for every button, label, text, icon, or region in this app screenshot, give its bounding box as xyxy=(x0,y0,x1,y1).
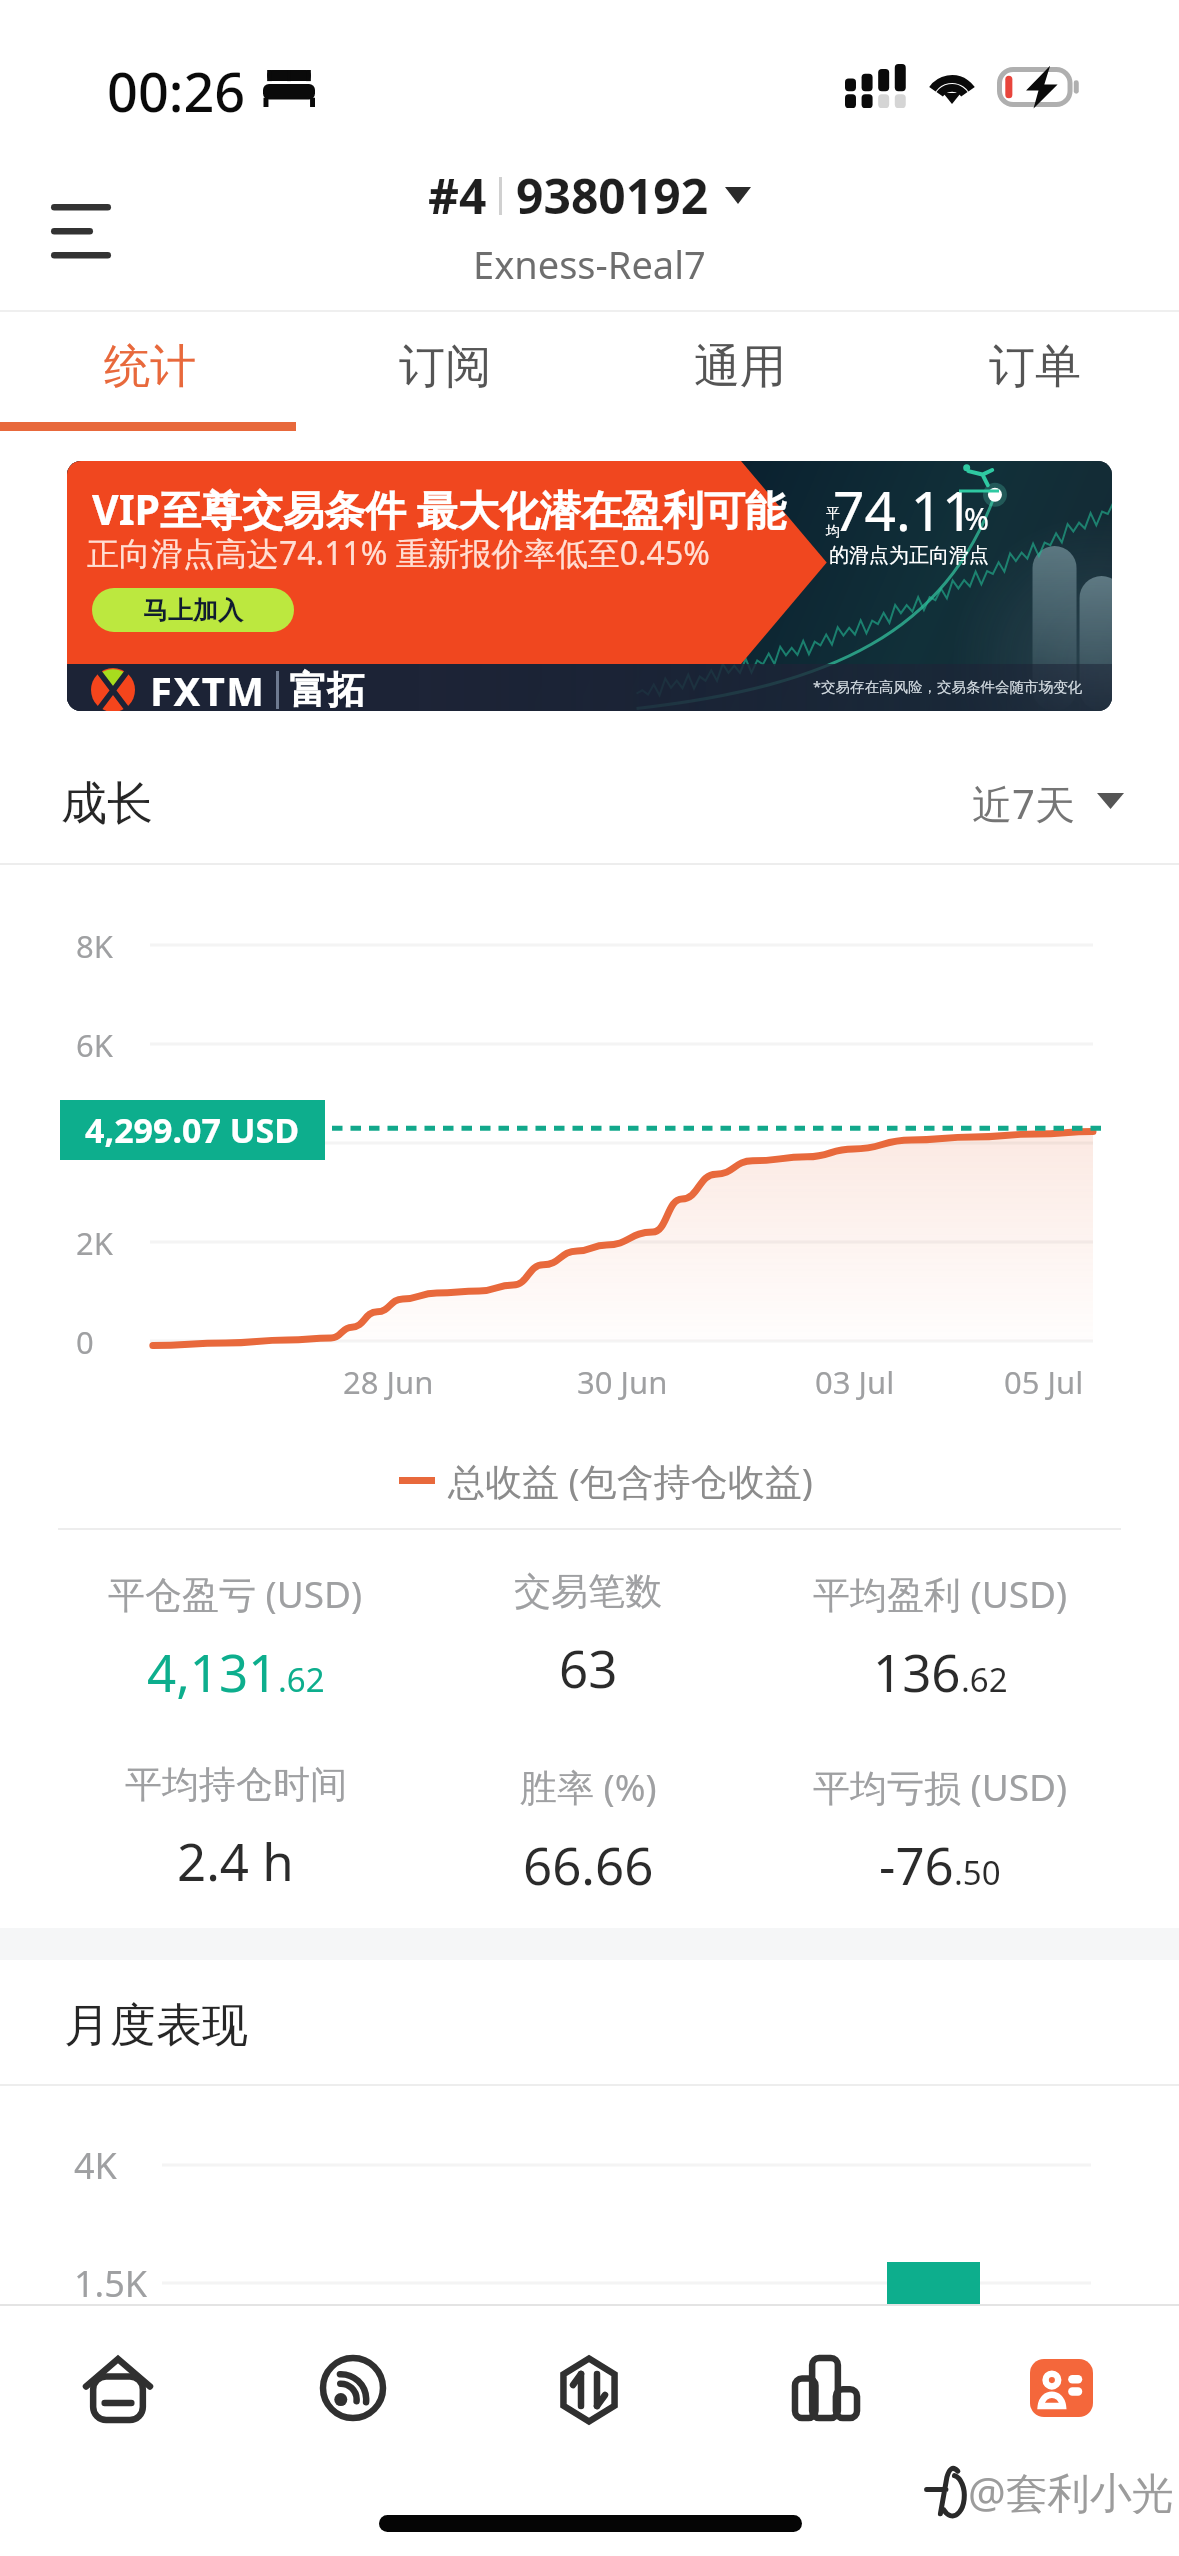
staticText: 4,131 xyxy=(147,1637,278,1706)
staticText: 平均持仓时间 xyxy=(125,1761,347,1808)
staticText: 66.66 xyxy=(523,1830,654,1899)
staticText: 30 Jun xyxy=(577,1361,668,1403)
staticText: 63 xyxy=(559,1633,618,1702)
staticText: 03 Jul xyxy=(815,1361,895,1403)
staticText: @套利小光 xyxy=(968,2463,1174,2520)
button[interactable]: 订阅 xyxy=(294,310,589,431)
button[interactable]: History xyxy=(707,2304,943,2470)
button[interactable]: Home xyxy=(0,2304,235,2470)
button[interactable]: Accounts xyxy=(943,2304,1179,2470)
staticText: 4,299.07 USD xyxy=(85,1107,300,1153)
button[interactable]: 统计 xyxy=(0,310,294,431)
staticText: 1.5K xyxy=(74,2259,148,2308)
staticText: 富拓 xyxy=(289,666,365,711)
staticText: Exness-Real7 xyxy=(473,238,706,290)
staticText: 成长 xyxy=(61,775,153,833)
staticText: FXTM xyxy=(150,663,266,711)
staticText: 136 xyxy=(873,1637,961,1706)
staticText: 8K xyxy=(76,925,113,967)
staticText: 月度表现 xyxy=(64,1997,248,2055)
staticText: 马上加入 xyxy=(143,595,243,626)
staticText: 总收益 (包含持仓收益) xyxy=(448,1455,813,1506)
button[interactable]: 近7天 xyxy=(972,773,1124,828)
staticText: 平均亏损 (USD) xyxy=(813,1761,1068,1812)
button[interactable]: FXTM VIP advertisement xyxy=(67,461,1112,711)
staticText: .62 xyxy=(278,1657,325,1702)
staticText: 0 xyxy=(76,1321,94,1363)
button[interactable]: 通用 xyxy=(589,310,884,431)
staticText: 均 xyxy=(826,523,840,541)
staticText: 9380192 xyxy=(516,163,709,228)
staticText: 近7天 xyxy=(972,776,1075,831)
button[interactable]: Menu xyxy=(6,179,156,283)
staticText: 通用 xyxy=(694,338,786,396)
staticText: 05 Jul xyxy=(1004,1361,1084,1403)
staticText: 订阅 xyxy=(399,338,491,396)
staticText: 2K xyxy=(76,1222,113,1264)
staticText: % xyxy=(964,498,989,539)
staticText: 6K xyxy=(76,1024,113,1066)
staticText: VIP至尊交易条件 最大化潜在盈利可能 xyxy=(92,481,786,537)
button[interactable]: Trade xyxy=(471,2304,707,2470)
staticText: 00:26 xyxy=(107,54,246,128)
staticText: 4K xyxy=(74,2141,117,2190)
staticText: 的滑点为正向滑点 xyxy=(829,543,989,568)
staticText: 平均盈利 (USD) xyxy=(813,1568,1068,1619)
staticText: 统计 xyxy=(104,338,196,396)
staticText: *交易存在高风险，交易条件会随市场变化 xyxy=(813,676,1082,696)
button[interactable]: 订单 xyxy=(884,310,1179,431)
staticText: 28 Jun xyxy=(343,1361,434,1403)
staticText: 2.4 h xyxy=(177,1826,294,1895)
staticText: 胜率 (%) xyxy=(520,1761,657,1812)
staticText: #4 xyxy=(428,163,487,228)
staticText: 74.11 xyxy=(833,472,974,547)
staticText: 订单 xyxy=(989,338,1081,396)
staticText: -76 xyxy=(879,1830,954,1899)
staticText: .62 xyxy=(961,1657,1008,1702)
staticText: .50 xyxy=(954,1850,1001,1895)
button[interactable]: Quotes xyxy=(235,2304,471,2470)
staticText: 交易笔数 xyxy=(514,1568,662,1615)
staticText: 正向滑点高达74.11% 重新报价率低至0.45% xyxy=(87,531,710,575)
staticText: 平 xyxy=(826,505,840,523)
staticText: 平仓盈亏 (USD) xyxy=(108,1568,363,1619)
